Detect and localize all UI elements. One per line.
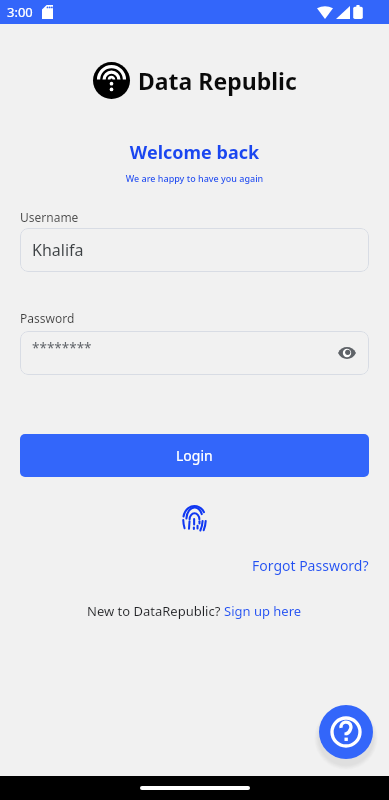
staticText: Khalifa (32, 239, 84, 261)
button[interactable]: Sign up here (224, 602, 302, 620)
staticText: Username (20, 209, 79, 225)
staticText: Password (20, 310, 75, 326)
staticText: Sign up here (224, 602, 302, 620)
staticText: Data Republic (138, 65, 297, 96)
button[interactable]: Khalifa (20, 228, 369, 272)
staticText: ******** (32, 339, 92, 357)
staticText: New to DataRepublic? (87, 602, 224, 620)
staticText: 3:00 (7, 3, 33, 21)
staticText: We are happy to have you again (0, 172, 389, 184)
button[interactable]: Fingerprint login (182, 508, 207, 533)
button[interactable]: Login (20, 434, 369, 477)
button[interactable]: ******** (20, 331, 369, 375)
staticText: Forgot Password? (252, 556, 369, 575)
staticText: Welcome back (0, 140, 389, 165)
button[interactable]: Help (319, 705, 373, 759)
button[interactable]: Show password (335, 341, 359, 365)
button[interactable]: Forgot Password? (252, 556, 369, 575)
staticText: Login (176, 446, 213, 465)
